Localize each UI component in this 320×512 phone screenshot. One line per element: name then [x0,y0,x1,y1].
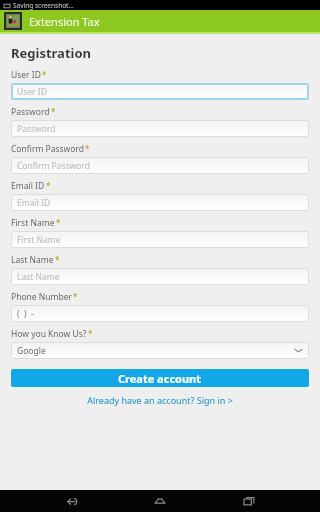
button[interactable]: ( ) - [11,305,309,322]
staticText: * [56,217,61,228]
staticText: How you Know Us? [11,328,87,340]
staticText: Email ID [11,180,45,192]
staticText: Password [17,123,56,135]
button[interactable]: Last Name [11,268,309,285]
staticText: ( ) - [17,308,34,320]
staticText: * [42,69,47,80]
button[interactable]: Already have an account? Sign in > [11,394,309,406]
staticText: User ID [17,86,47,98]
button[interactable]: Confirm Password [11,157,309,174]
staticText: Confirm Password [17,160,90,172]
staticText: User ID [11,69,41,81]
staticText: Phone Number [11,291,72,303]
staticText: Already have an account? Sign in > [87,394,233,406]
staticText: * [51,106,56,117]
staticText: Registration [11,44,92,62]
staticText: * [73,291,78,302]
button[interactable]: Password [11,120,309,137]
button[interactable]: Recent apps [232,490,266,512]
staticText: Confirm Password [11,143,84,155]
button[interactable]: App icon [4,12,22,30]
button[interactable]: User ID [11,83,309,100]
staticText: Google [17,345,46,357]
staticText: First Name [17,234,61,246]
staticText: Password [11,106,50,118]
button[interactable]: Home [143,490,177,512]
staticText: Last Name [17,271,60,283]
staticText: Email ID [17,197,51,209]
button[interactable]: First Name [11,231,309,248]
staticText: * [46,180,51,191]
staticText: * [55,254,60,265]
button[interactable]: Back [55,490,89,512]
staticText: Saving screenshot… [13,1,74,10]
staticText: Extension Tax [29,14,100,29]
button[interactable]: Google [11,342,309,359]
staticText: First Name [11,217,55,229]
button[interactable]: Create account [11,369,309,387]
staticText: Create account [118,371,202,386]
staticText: * [85,143,90,154]
staticText: * [88,328,93,339]
staticText: Last Name [11,254,54,266]
button[interactable]: Email ID [11,194,309,211]
